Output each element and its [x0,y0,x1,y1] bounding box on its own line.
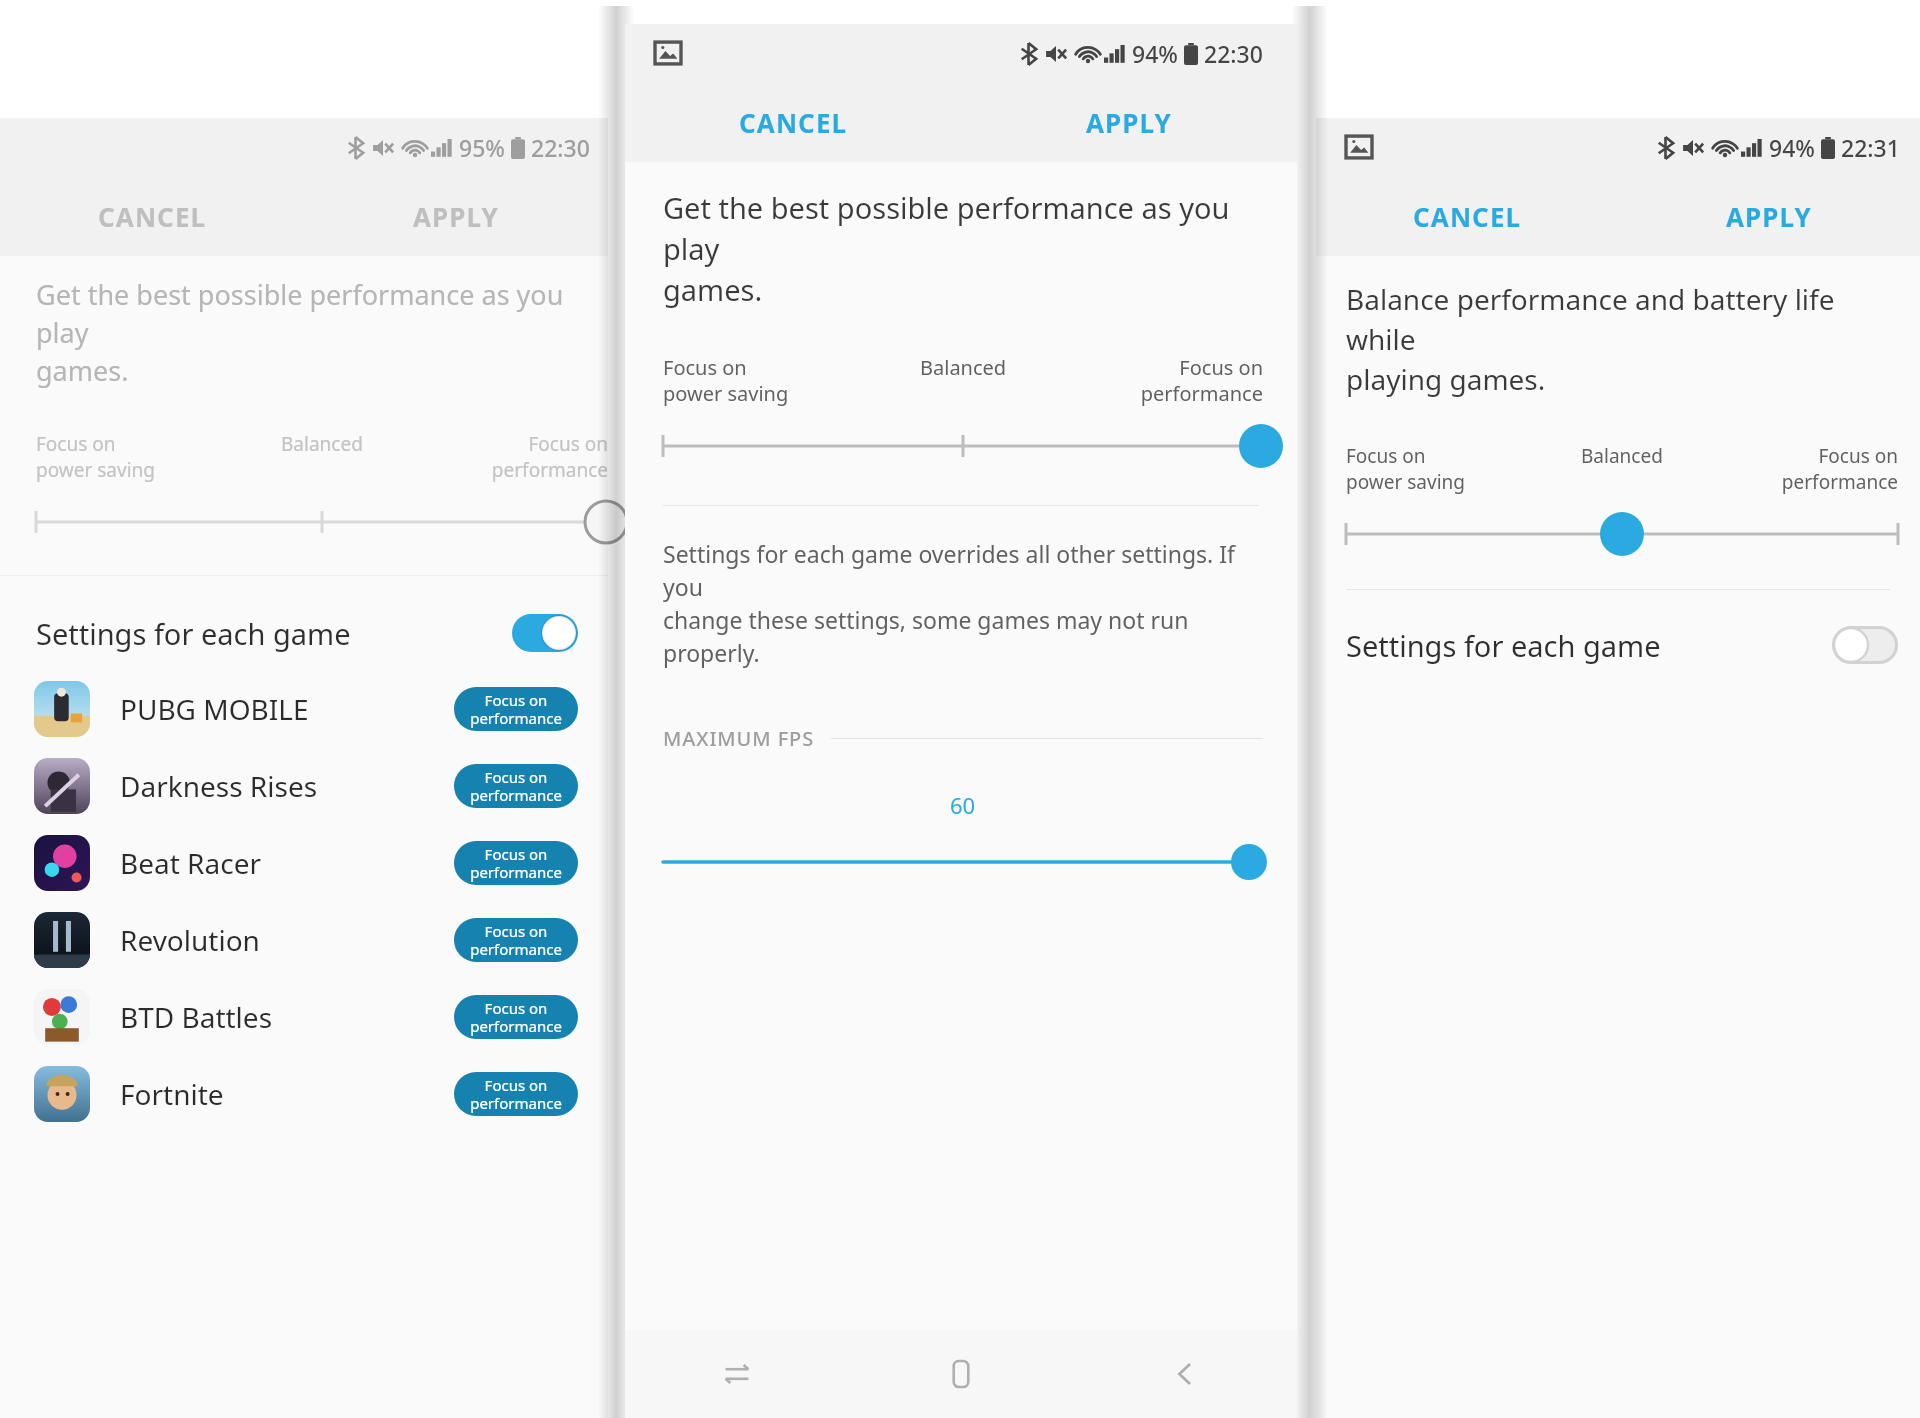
staticText: Beat Racer [120,844,262,882]
staticText: APPLY [1726,199,1812,234]
staticText: Balanced [1581,443,1663,469]
button[interactable]: Focus on performance [454,764,578,808]
staticText: CANCEL [739,105,848,140]
staticText: Settings for each game [1346,626,1661,665]
staticText: Focus on performance [470,767,562,806]
button[interactable]: APPLY [304,176,608,256]
button[interactable]: Performance level slider [663,423,1263,469]
staticText: Focus on performance [491,431,608,483]
staticText: APPLY [413,199,499,234]
button[interactable]: Focus on performance [454,841,578,885]
staticText: Revolution [120,921,260,959]
staticText: Focus on performance [470,998,562,1037]
staticText: 95% [459,132,505,163]
button[interactable]: Recents [625,1330,849,1418]
staticText: 22:31 [1841,132,1900,163]
button[interactable]: Performance level slider [1346,511,1898,557]
staticText: Darkness Rises [120,767,318,805]
staticText: Focus on performance [1140,354,1263,407]
button[interactable]: Back [1073,1330,1297,1418]
staticText: 22:30 [531,132,590,163]
button[interactable]: CANCEL [1316,176,1618,256]
button[interactable]: BTD Battles [0,978,608,1055]
button[interactable]: Focus on performance [454,918,578,962]
staticText: Focus on performance [470,844,562,883]
staticText: 60 [950,790,976,820]
button[interactable]: APPLY [961,82,1297,162]
staticText: MAXIMUM FPS [663,725,815,752]
staticText: Focus on performance [470,921,562,960]
button[interactable]: Home [849,1330,1073,1418]
button[interactable]: APPLY [1618,176,1920,256]
button[interactable]: CANCEL [0,176,304,256]
button[interactable]: PUBG MOBILE [0,670,608,747]
button[interactable]: Revolution [0,901,608,978]
staticText: PUBG MOBILE [120,690,309,728]
staticText: CANCEL [1413,199,1522,234]
staticText: CANCEL [98,199,207,234]
staticText: Balanced [920,354,1007,381]
button[interactable]: Darkness Rises [0,747,608,824]
staticText: Balance performance and battery life whi… [1346,280,1910,399]
button[interactable]: Focus on performance [454,687,578,731]
staticText: APPLY [1086,105,1172,140]
staticText: Settings for each game [36,614,351,653]
button[interactable]: Maximum FPS slider [625,840,1297,884]
button[interactable]: Switch on [512,614,578,652]
staticText: Settings for each game overrides all oth… [663,538,1277,669]
button[interactable]: Switch off [1832,626,1898,664]
staticText: Get the best possible performance as you… [663,188,1277,310]
button[interactable]: Performance level slider [36,499,608,545]
staticText: Focus on performance [1781,443,1898,495]
staticText: 94% [1769,132,1815,163]
staticText: Fortnite [120,1075,224,1113]
button[interactable]: Settings for each game [0,596,608,670]
button[interactable]: Focus on performance [454,1072,578,1116]
staticText: 94% [1132,38,1178,69]
button[interactable]: Fortnite [0,1055,608,1132]
staticText: Focus on performance [470,1075,562,1114]
staticText: Focus on power saving [1346,443,1465,495]
button[interactable]: Beat Racer [0,824,608,901]
staticText: Focus on performance [470,690,562,729]
staticText: 22:30 [1204,38,1263,69]
staticText: BTD Battles [120,998,273,1036]
staticText: Balanced [281,431,363,457]
staticText: Focus on power saving [663,354,789,407]
staticText: Focus on power saving [36,431,155,483]
button[interactable]: Settings for each game [1316,608,1920,682]
button[interactable]: CANCEL [625,82,961,162]
staticText: Get the best possible performance as you… [36,276,596,389]
button[interactable]: Focus on performance [454,995,578,1039]
